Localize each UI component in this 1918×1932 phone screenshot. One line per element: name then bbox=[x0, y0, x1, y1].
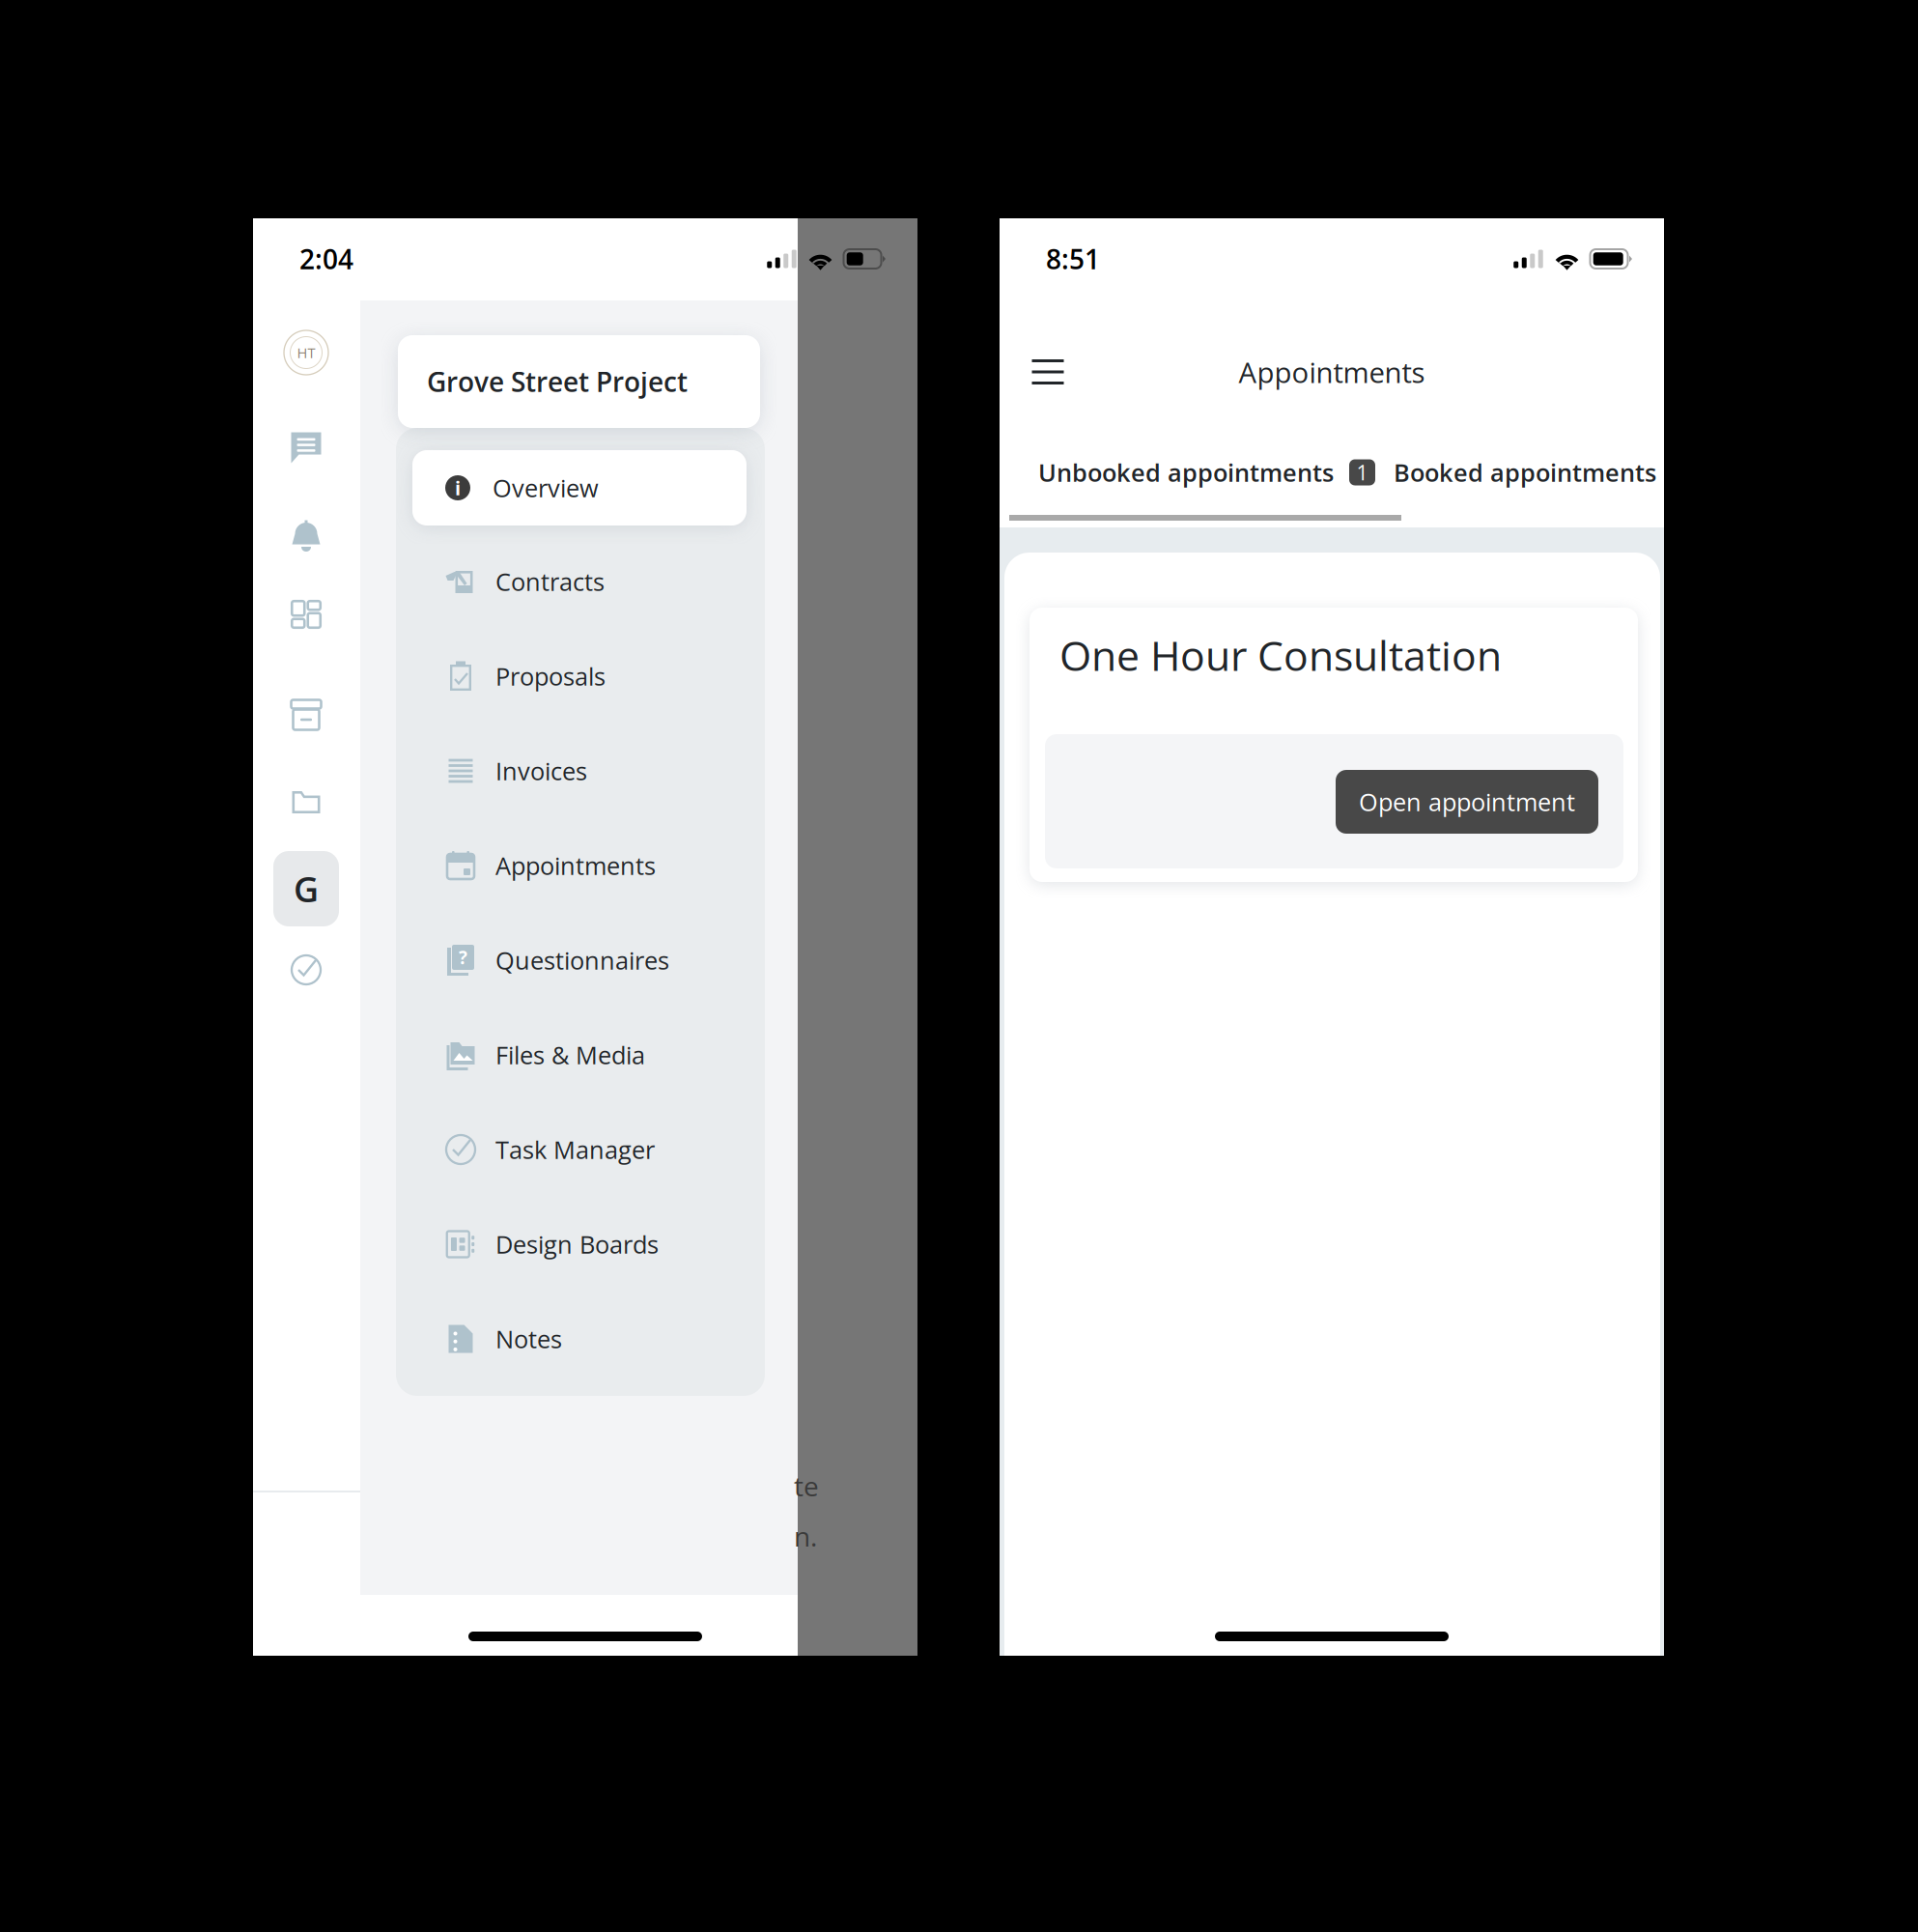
button[interactable]: Home bbox=[253, 324, 359, 382]
button[interactable]: Dashboard bbox=[253, 587, 359, 641]
staticText: 1 bbox=[1356, 458, 1368, 486]
button[interactable]: Contracts bbox=[396, 534, 765, 629]
staticText: Design Boards bbox=[495, 1228, 659, 1261]
button[interactable]: i bbox=[412, 450, 747, 526]
staticText: ? bbox=[459, 945, 467, 970]
staticText: One Hour Consultation bbox=[1059, 627, 1502, 683]
staticText: Open appointment bbox=[1359, 785, 1575, 818]
button[interactable]: Notes bbox=[396, 1292, 765, 1386]
staticText: Files & Media bbox=[495, 1038, 645, 1072]
staticText: te bbox=[794, 1467, 819, 1504]
button[interactable]: Notifications bbox=[253, 509, 359, 563]
staticText: Appointments bbox=[1239, 353, 1425, 391]
button[interactable]: ? bbox=[396, 913, 765, 1008]
button[interactable]: Grove Street Project bbox=[398, 335, 760, 428]
staticText: Booked appointments bbox=[1394, 456, 1656, 489]
staticText: Questionnaires bbox=[495, 944, 669, 977]
staticText: i bbox=[455, 475, 461, 501]
button[interactable]: G bbox=[253, 851, 359, 926]
staticText: Appointments bbox=[495, 849, 656, 882]
staticText: n. bbox=[794, 1518, 817, 1554]
button[interactable]: Messages bbox=[253, 421, 359, 475]
staticText: Task Manager bbox=[495, 1133, 655, 1166]
staticText: Unbooked appointments bbox=[1038, 456, 1334, 489]
staticText: Invoices bbox=[495, 754, 587, 788]
staticText: G bbox=[294, 865, 319, 912]
staticText: Grove Street Project bbox=[427, 363, 688, 400]
staticText: HT bbox=[297, 343, 315, 362]
staticText: Overview bbox=[493, 471, 599, 505]
button[interactable]: Appointments bbox=[396, 818, 765, 913]
button[interactable]: Design Boards bbox=[396, 1197, 765, 1292]
button[interactable]: Tasks bbox=[253, 943, 359, 997]
button[interactable]: Files bbox=[253, 775, 359, 829]
button[interactable]: Archive bbox=[253, 688, 359, 742]
button[interactable]: Task Manager bbox=[396, 1102, 765, 1197]
button[interactable]: Invoices bbox=[396, 724, 765, 818]
staticText: 2:04 bbox=[299, 240, 353, 277]
staticText: 8:51 bbox=[1046, 240, 1100, 277]
button[interactable]: Booked appointments bbox=[1394, 437, 1664, 508]
button[interactable]: Files & Media bbox=[396, 1008, 765, 1102]
staticText: Contracts bbox=[495, 565, 605, 598]
staticText: Notes bbox=[495, 1322, 562, 1356]
button[interactable]: Proposals bbox=[396, 629, 765, 724]
staticText: Proposals bbox=[495, 660, 606, 693]
button[interactable]: Open appointment bbox=[1336, 770, 1598, 834]
button[interactable]: Menu bbox=[1015, 341, 1081, 403]
button[interactable]: Unbooked appointments bbox=[1009, 437, 1401, 508]
